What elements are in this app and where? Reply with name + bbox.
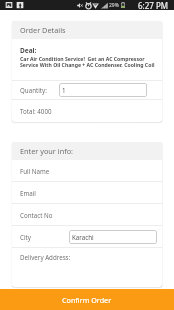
button[interactable]: Full Name [12, 160, 162, 181]
staticText: Deal: [20, 46, 37, 55]
staticText: Confirm Order [62, 295, 112, 305]
button[interactable]: Karachi [69, 230, 157, 244]
staticText: 6:27 PM [138, 0, 169, 10]
staticText: Quantity: [20, 86, 47, 94]
button[interactable]: 1 [59, 83, 147, 97]
staticText: Car Air Condition Service! Get an AC Com… [20, 55, 155, 69]
staticText: City [20, 233, 31, 241]
staticText: Delivery Address: [20, 253, 71, 261]
staticText: Karachi [72, 233, 94, 241]
button[interactable]: Confirm Order [0, 289, 174, 310]
staticText: Order Details [20, 25, 66, 35]
button[interactable]: Delivery Address: [12, 248, 162, 287]
staticText: Total: 4000 [20, 107, 52, 115]
staticText: Email [20, 189, 36, 197]
button[interactable]: Contact No [12, 204, 162, 225]
button[interactable]: Email [12, 182, 162, 203]
staticText: 1 [62, 86, 66, 94]
staticText: Enter your info: [20, 146, 74, 156]
staticText: 29% [109, 2, 119, 9]
staticText: Full Name [20, 167, 50, 175]
staticText: Contact No [20, 211, 53, 219]
